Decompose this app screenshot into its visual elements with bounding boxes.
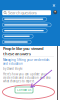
button[interactable]: Contact us (15, 87, 33, 93)
button[interactable] (2, 29, 47, 32)
staticText: Search questions (8, 10, 37, 15)
staticText: Contact us (17, 88, 31, 92)
button[interactable] (2, 23, 51, 27)
staticText: Managing lifting your credentials and ed… (3, 58, 49, 65)
staticText: People like you viewed these answers (3, 46, 44, 56)
button[interactable] (2, 17, 47, 21)
button[interactable] (2, 34, 33, 38)
button[interactable] (2, 40, 31, 44)
staticText: by David Boyle (3, 67, 23, 70)
button[interactable]: Profile (53, 10, 57, 14)
staticText: Here's how you can update your credentia… (3, 72, 51, 83)
button[interactable]: Close (53, 4, 55, 7)
button[interactable]: Search questions (2, 10, 51, 15)
